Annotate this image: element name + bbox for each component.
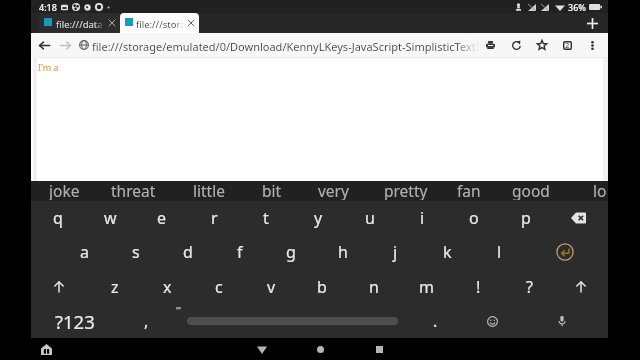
- button[interactable]: Recents: [368, 338, 390, 360]
- button[interactable]: v: [251, 270, 291, 304]
- button[interactable]: .: [418, 304, 452, 338]
- staticText: 2: [565, 40, 570, 50]
- button[interactable]: Enter: [548, 235, 582, 269]
- button[interactable]: e: [142, 201, 182, 235]
- button[interactable]: c: [199, 270, 239, 304]
- staticText: fan: [457, 180, 481, 200]
- button[interactable]: Home app: [35, 338, 57, 360]
- button[interactable]: file:///stora: [120, 13, 199, 33]
- button[interactable]: bit: [238, 180, 306, 200]
- button[interactable]: pretty: [372, 180, 440, 200]
- button[interactable]: Home: [309, 338, 331, 360]
- staticText: .: [433, 310, 438, 332]
- staticText: I'm a: [38, 61, 59, 73]
- button[interactable]: Shift: [42, 270, 76, 304]
- button[interactable]: k: [427, 235, 467, 269]
- button[interactable]: b: [302, 270, 342, 304]
- button[interactable]: Back: [34, 35, 54, 55]
- button[interactable]: New tab: [582, 13, 602, 33]
- staticText: q: [53, 207, 63, 229]
- staticText: l: [497, 241, 502, 263]
- button[interactable]: good: [497, 180, 565, 200]
- button[interactable]: j: [375, 235, 415, 269]
- staticText: c: [215, 276, 223, 298]
- staticText: n: [369, 276, 379, 298]
- button[interactable]: !: [458, 270, 498, 304]
- button[interactable]: f: [220, 235, 260, 269]
- button[interactable]: ?123: [45, 304, 105, 338]
- button[interactable]: Emoji: [475, 304, 509, 338]
- staticText: ?: [526, 276, 533, 298]
- staticText: ,: [144, 310, 149, 332]
- button[interactable]: q: [38, 201, 78, 235]
- button[interactable]: z: [95, 270, 135, 304]
- button[interactable]: p: [506, 201, 546, 235]
- button[interactable]: g: [271, 235, 311, 269]
- staticText: 36%: [568, 1, 586, 13]
- staticText: ?123: [55, 309, 95, 334]
- staticText: b: [317, 276, 327, 298]
- button[interactable]: ,: [129, 304, 163, 338]
- staticText: a: [80, 241, 89, 263]
- button[interactable]: joke: [30, 180, 98, 200]
- button[interactable]: very: [299, 180, 367, 200]
- staticText: z: [111, 276, 119, 298]
- button[interactable]: n: [354, 270, 394, 304]
- button[interactable]: Print: [480, 35, 500, 55]
- staticText: j: [393, 241, 398, 263]
- staticText: u: [365, 207, 375, 229]
- staticText: threat: [111, 180, 156, 200]
- button[interactable]: o: [454, 201, 494, 235]
- staticText: file:///data: [56, 18, 103, 30]
- button[interactable]: w: [90, 201, 130, 235]
- button[interactable]: u: [350, 201, 390, 235]
- button[interactable]: Voice input: [545, 304, 579, 338]
- button[interactable]: little: [175, 180, 243, 200]
- button[interactable]: y: [298, 201, 338, 235]
- button[interactable]: a: [64, 235, 104, 269]
- button[interactable]: ?: [509, 270, 549, 304]
- staticText: x: [163, 276, 172, 298]
- staticText: d: [183, 241, 193, 263]
- button[interactable]: Space: [187, 304, 398, 338]
- button[interactable]: Tabs: [557, 35, 577, 55]
- staticText: good: [512, 180, 550, 200]
- button[interactable]: threat: [99, 180, 167, 200]
- staticText: p: [521, 207, 531, 229]
- staticText: g: [286, 241, 296, 263]
- button[interactable]: s: [116, 235, 156, 269]
- button[interactable]: More options: [582, 35, 602, 55]
- button[interactable]: Reload: [506, 35, 526, 55]
- staticText: 4:18: [39, 1, 57, 13]
- staticText: bit: [262, 180, 282, 200]
- staticText: o: [469, 207, 479, 229]
- button[interactable]: Forward: [55, 35, 75, 55]
- button[interactable]: t: [246, 201, 286, 235]
- button[interactable]: Shift: [564, 270, 598, 304]
- staticText: lo: [593, 180, 607, 200]
- button[interactable]: fan: [435, 180, 503, 200]
- button[interactable]: i: [402, 201, 442, 235]
- staticText: very: [318, 180, 349, 200]
- button[interactable]: d: [168, 235, 208, 269]
- button[interactable]: file:///data: [39, 13, 120, 33]
- staticText: r: [211, 207, 218, 229]
- button[interactable]: x: [147, 270, 187, 304]
- staticText: pretty: [384, 180, 428, 200]
- staticText: !: [476, 276, 481, 298]
- button[interactable]: Backspace: [561, 201, 595, 235]
- staticText: h: [338, 241, 348, 263]
- button[interactable]: lo: [566, 180, 634, 200]
- staticText: v: [267, 276, 276, 298]
- staticText: i: [420, 207, 425, 229]
- button[interactable]: h: [323, 235, 363, 269]
- button[interactable]: Bookmark: [532, 35, 552, 55]
- button[interactable]: l: [479, 235, 519, 269]
- button[interactable]: Back: [251, 338, 273, 360]
- staticText: little: [193, 180, 225, 200]
- staticText: s: [132, 241, 140, 263]
- staticText: m: [419, 276, 434, 298]
- button[interactable]: r: [194, 201, 234, 235]
- staticText: joke: [49, 180, 80, 200]
- button[interactable]: m: [406, 270, 446, 304]
